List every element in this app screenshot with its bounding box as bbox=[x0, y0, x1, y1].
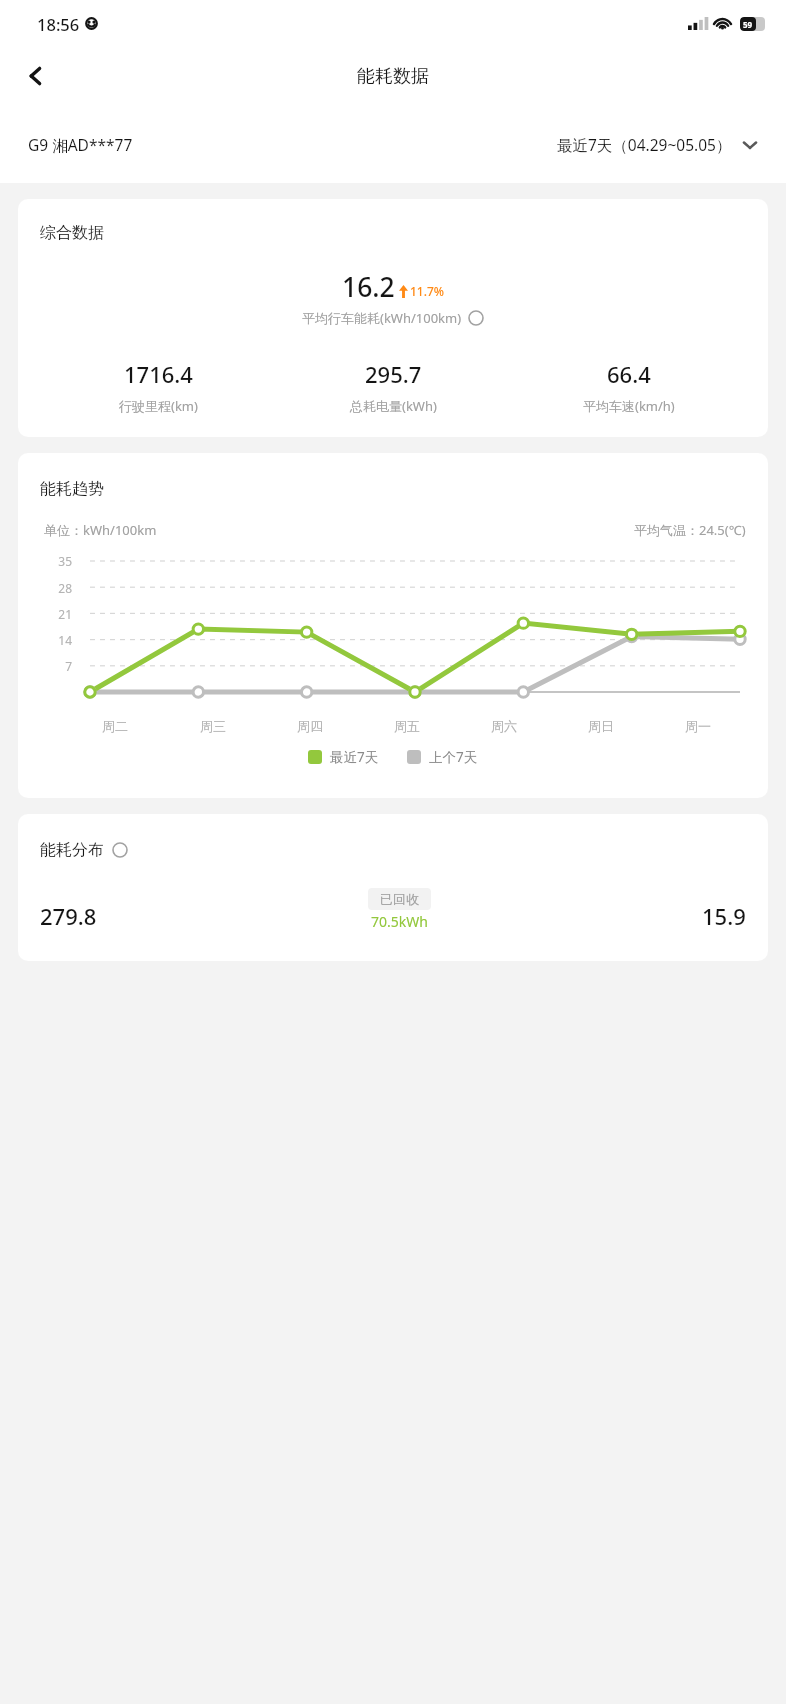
staticText: 1716.4 bbox=[124, 359, 193, 389]
staticText: 平均行车能耗(kWh/100km) bbox=[302, 309, 462, 327]
staticText: 周四 bbox=[297, 718, 323, 734]
staticText: 周三 bbox=[200, 718, 226, 734]
staticText: 最近7天 bbox=[330, 748, 379, 766]
staticText: 周六 bbox=[491, 718, 517, 734]
staticText: 能耗分布 bbox=[40, 840, 104, 860]
staticText: 14 bbox=[40, 632, 72, 648]
staticText: 已回收 bbox=[380, 891, 419, 907]
button[interactable]: 能耗分布 bbox=[18, 814, 768, 961]
staticText: 周二 bbox=[102, 718, 128, 734]
staticText: 21 bbox=[40, 606, 72, 622]
staticText: 66.4 bbox=[607, 359, 651, 389]
staticText: 单位：kWh/100km bbox=[44, 521, 157, 539]
button[interactable]: 最近7天（04.29~05.05） bbox=[557, 128, 758, 161]
staticText: 平均车速(km/h) bbox=[583, 397, 675, 415]
staticText: 周日 bbox=[588, 718, 614, 734]
staticText: 295.7 bbox=[365, 359, 422, 389]
staticText: 平均气温：24.5(℃) bbox=[634, 521, 746, 539]
staticText: G9 湘AD***77 bbox=[28, 134, 133, 155]
staticText: 最近7天（04.29~05.05） bbox=[557, 134, 732, 155]
staticText: 28 bbox=[40, 580, 72, 596]
button[interactable]: 综合数据 bbox=[18, 199, 768, 437]
staticText: 59 bbox=[743, 19, 753, 30]
staticText: 18:56 bbox=[37, 13, 80, 35]
staticText: 11.7% bbox=[410, 283, 445, 299]
staticText: 综合数据 bbox=[40, 223, 104, 243]
staticText: 行驶里程(km) bbox=[119, 397, 198, 415]
staticText: 70.5kWh bbox=[371, 912, 428, 931]
staticText: 35 bbox=[40, 553, 72, 569]
staticText: 7 bbox=[40, 658, 72, 674]
staticText: 能耗趋势 bbox=[40, 479, 104, 499]
button[interactable]: 能耗趋势 bbox=[18, 453, 768, 798]
staticText: 16.2 bbox=[342, 269, 395, 305]
staticText: 279.8 bbox=[40, 901, 97, 931]
staticText: 上个7天 bbox=[429, 748, 478, 766]
button[interactable]: Back bbox=[12, 52, 60, 100]
staticText: 总耗电量(kWh) bbox=[350, 397, 437, 415]
staticText: 15.9 bbox=[702, 901, 746, 931]
staticText: 周五 bbox=[394, 718, 420, 734]
staticText: 周一 bbox=[685, 718, 711, 734]
staticText: 能耗数据 bbox=[357, 65, 429, 88]
